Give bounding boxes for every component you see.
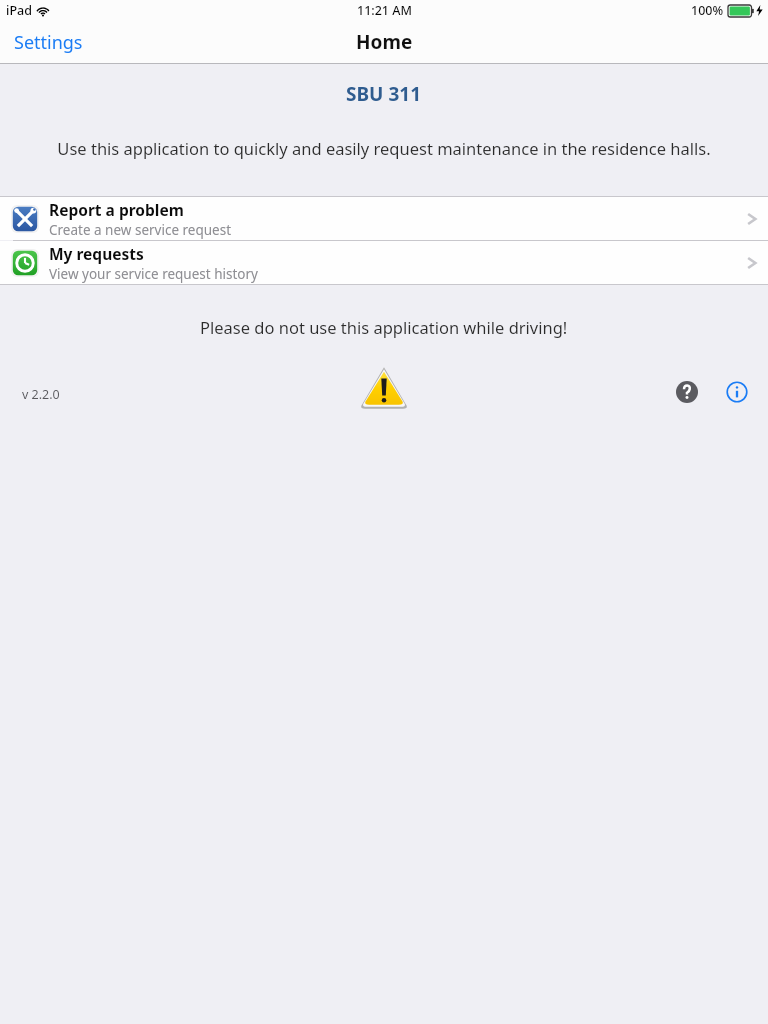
staticText: iPad (6, 2, 32, 19)
staticText: 100% (691, 2, 724, 19)
staticText: View your service request history (49, 265, 258, 283)
staticText: v 2.2.0 (22, 386, 60, 403)
staticText: Create a new service request (49, 221, 232, 239)
staticText: 11:21 AM (357, 2, 412, 19)
button[interactable]: Warning (357, 364, 411, 412)
button[interactable]: Information (726, 381, 748, 403)
button[interactable]: Settings (0, 22, 97, 63)
staticText: Home (356, 29, 413, 55)
staticText: Use this application to quickly and easi… (57, 137, 711, 159)
staticText: SBU 311 (346, 81, 422, 107)
staticText: Report a problem (49, 199, 184, 220)
staticText: Please do not use this application while… (200, 316, 568, 338)
staticText: Settings (14, 30, 83, 55)
button[interactable]: Help (676, 381, 698, 403)
button[interactable]: Report a problem (0, 197, 768, 240)
staticText: My requests (49, 243, 144, 264)
button[interactable]: My requests (0, 241, 768, 284)
